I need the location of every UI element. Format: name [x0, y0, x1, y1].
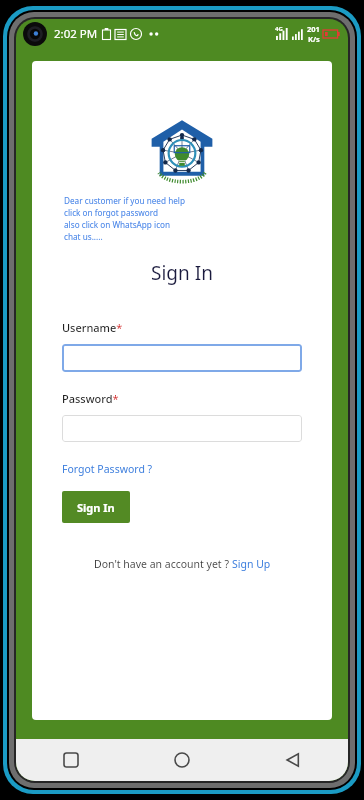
staticText: 2:02 PM — [54, 26, 98, 42]
staticText: click on forgot password — [64, 207, 158, 218]
staticText: Forgot Password ? — [62, 462, 153, 476]
staticText: chat us..... — [64, 231, 103, 242]
button[interactable] — [62, 415, 302, 442]
staticText: also click on WhatsApp icon — [64, 219, 171, 230]
staticText: Sign In — [77, 500, 115, 515]
staticText: 4G — [275, 25, 283, 33]
staticText: Don't have an account yet ? — [94, 557, 232, 571]
button[interactable]: Sign In — [62, 491, 130, 523]
staticText: K/s — [308, 34, 320, 44]
button[interactable]: Home — [126, 739, 237, 781]
button[interactable] — [62, 344, 302, 372]
button[interactable]: Forgot Password ? — [62, 462, 153, 476]
button[interactable]: Back — [237, 739, 348, 781]
staticText: Dear customer if you need help — [64, 195, 185, 206]
staticText: Sign In — [151, 260, 213, 286]
staticText: Username* — [62, 320, 123, 335]
button[interactable]: Recent apps — [16, 739, 126, 781]
button[interactable]: Sign Up — [232, 557, 271, 571]
staticText: Password* — [62, 391, 119, 406]
staticText: 201 — [307, 24, 320, 34]
staticText: Sign Up — [232, 557, 271, 571]
